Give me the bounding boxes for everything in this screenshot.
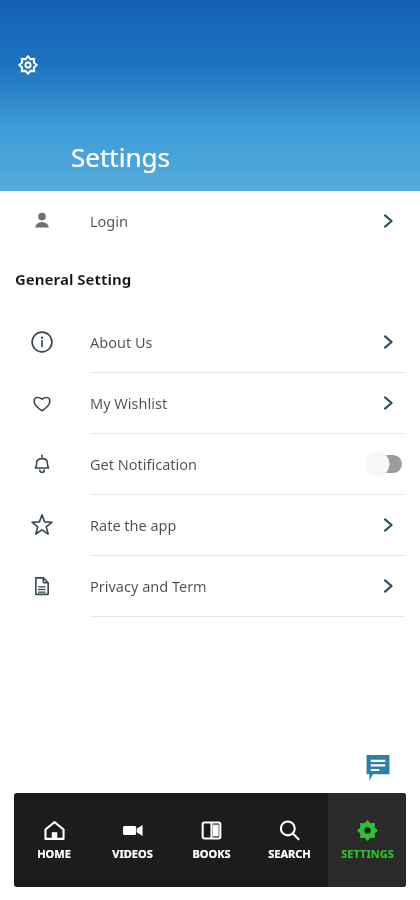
button[interactable]: SEARCH bbox=[250, 793, 328, 887]
staticText: SEARCH bbox=[268, 846, 311, 861]
button[interactable]: Rate the app bbox=[0, 495, 420, 555]
button[interactable]: Chat bbox=[350, 740, 406, 796]
button[interactable]: HOME bbox=[14, 793, 93, 887]
button[interactable]: BOOKS bbox=[172, 793, 250, 887]
staticText: Privacy and Term bbox=[90, 576, 207, 596]
staticText: About Us bbox=[90, 332, 153, 352]
button[interactable]: My Wishlist bbox=[0, 373, 420, 433]
button[interactable]: About Us bbox=[0, 312, 420, 372]
staticText: My Wishlist bbox=[90, 393, 168, 413]
staticText: BOOKS bbox=[192, 846, 231, 861]
staticText: General Setting bbox=[15, 269, 132, 289]
button[interactable]: Login bbox=[0, 191, 420, 251]
button[interactable]: Settings bbox=[12, 49, 44, 81]
staticText: VIDEOS bbox=[112, 846, 153, 861]
staticText: Rate the app bbox=[90, 515, 177, 535]
button[interactable]: Privacy and Term bbox=[0, 556, 420, 616]
staticText: Settings bbox=[71, 139, 170, 174]
button[interactable]: SETTINGS bbox=[328, 793, 406, 887]
button[interactable]: Get Notification bbox=[0, 434, 420, 494]
button[interactable]: VIDEOS bbox=[93, 793, 172, 887]
staticText: SETTINGS bbox=[341, 846, 394, 861]
staticText: Login bbox=[90, 211, 128, 231]
staticText: Get Notification bbox=[90, 454, 198, 474]
staticText: HOME bbox=[37, 846, 71, 861]
